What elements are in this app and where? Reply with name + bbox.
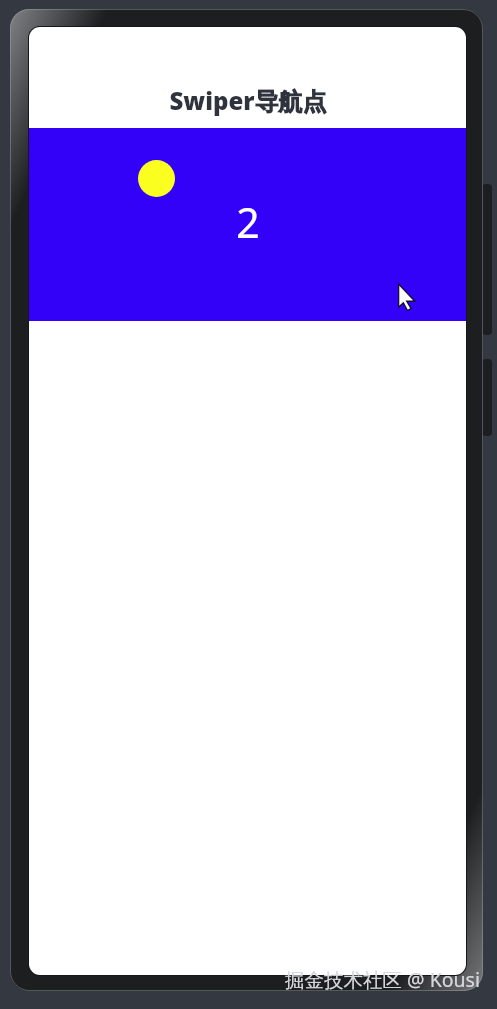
staticText: 掘金技术社区 @ Kousi xyxy=(285,966,480,993)
staticText: Swiper导航点 xyxy=(169,84,327,117)
button[interactable]: Swiper导航点 xyxy=(29,27,466,128)
staticText: 2 xyxy=(236,194,260,250)
button[interactable]: Volume buttons xyxy=(482,184,492,335)
button[interactable]: Power button xyxy=(482,359,492,436)
button[interactable]: 2 xyxy=(29,128,466,321)
button[interactable]: Swiper page indicator xyxy=(138,160,175,197)
